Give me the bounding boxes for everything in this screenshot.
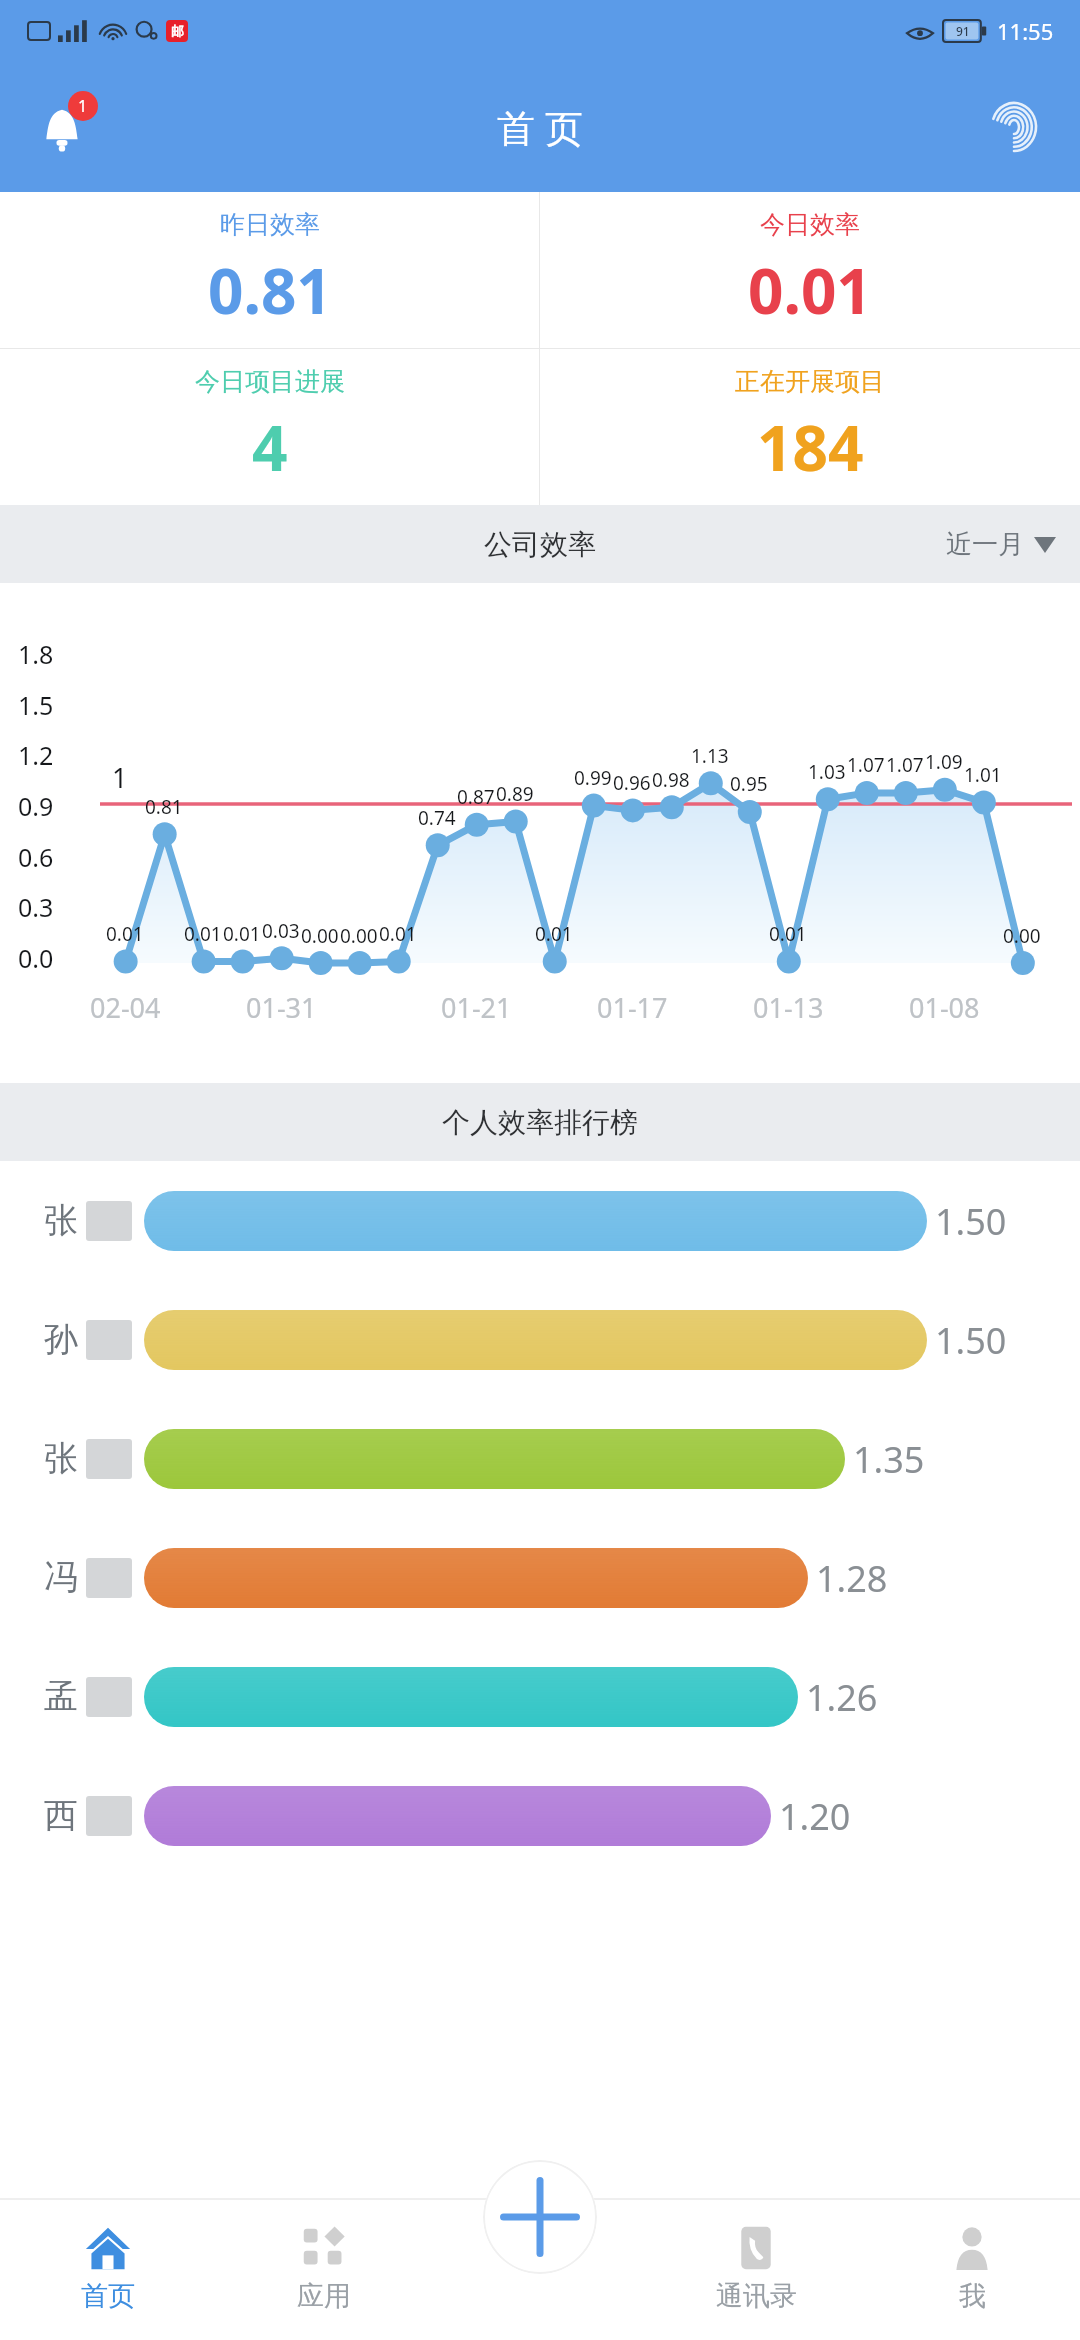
staticText: 0.99 [574, 765, 612, 791]
staticText: 1.01 [964, 762, 1002, 788]
staticText: 1.8 [18, 637, 54, 671]
staticText: 0.6 [18, 840, 54, 874]
button[interactable]: 张 [0, 1399, 1080, 1518]
button[interactable]: 指纹登录 [978, 91, 1050, 163]
staticText: 我 [959, 2279, 986, 2313]
staticText: 0.81 [208, 248, 332, 332]
staticText: 昨日效率 [220, 209, 320, 240]
staticText: 1.13 [691, 743, 729, 769]
staticText: 首 页 [497, 101, 583, 153]
staticText: 4 [252, 405, 288, 489]
staticText: 0.00 [301, 923, 339, 949]
button[interactable]: 通知 [22, 87, 102, 167]
staticText: 0.01 [223, 921, 261, 947]
staticText: 0.01 [748, 248, 872, 332]
button[interactable]: 应用 [216, 2198, 432, 2340]
button[interactable]: 正在开展项目 [540, 349, 1080, 505]
button[interactable]: 昨日效率 [0, 192, 539, 348]
staticText: 184 [757, 405, 864, 489]
button[interactable]: 冯 [0, 1518, 1080, 1637]
staticText: 0.03 [262, 918, 300, 944]
staticText: 1.2 [18, 738, 54, 772]
staticText: 公司效率 [484, 527, 596, 562]
button[interactable]: 首页 [0, 2198, 216, 2340]
staticText: 0.01 [184, 921, 222, 947]
staticText: 1.50 [935, 1197, 1007, 1246]
staticText: 0.87 [457, 784, 495, 810]
staticText: 0.74 [418, 805, 456, 831]
staticText: 0.01 [379, 921, 417, 947]
staticText: 正在开展项目 [735, 366, 885, 397]
button[interactable]: 新建 [483, 2160, 597, 2274]
staticText: 0.98 [652, 767, 690, 793]
staticText: 孟 [44, 1675, 78, 1718]
staticText: 1.07 [847, 752, 885, 778]
staticText: 0.01 [769, 921, 807, 947]
staticText: 0.3 [18, 890, 54, 924]
button[interactable]: 今日效率 [540, 192, 1080, 348]
button[interactable]: 张 [0, 1161, 1080, 1280]
staticText: 01-31 [246, 989, 317, 1026]
staticText: 应用 [297, 2279, 351, 2313]
staticText: 今日效率 [760, 209, 860, 240]
staticText: 1 [78, 95, 88, 117]
staticText: 0.01 [535, 921, 573, 947]
staticText: 1.5 [18, 688, 54, 722]
staticText: 1.07 [886, 752, 924, 778]
staticText: 0.95 [730, 771, 768, 797]
staticText: 张 [44, 1199, 78, 1242]
staticText: 0.89 [496, 781, 534, 807]
staticText: 通讯录 [716, 2279, 797, 2313]
staticText: 91 [956, 23, 970, 39]
staticText: 0.81 [145, 794, 183, 820]
staticText: 0.9 [18, 789, 54, 823]
staticText: 1.35 [853, 1435, 925, 1484]
staticText: 02-04 [90, 989, 161, 1026]
button[interactable]: 近一月 [946, 528, 1056, 561]
staticText: 01-13 [753, 989, 824, 1026]
staticText: 0.01 [106, 921, 144, 947]
staticText: 0.00 [1003, 923, 1041, 949]
staticText: 11:55 [997, 16, 1054, 46]
staticText: 西 [44, 1794, 78, 1837]
staticText: 邮 [171, 23, 184, 39]
staticText: 1 [112, 759, 128, 796]
staticText: 1.26 [806, 1673, 878, 1722]
staticText: 1.03 [808, 759, 846, 785]
staticText: 孙 [44, 1318, 78, 1361]
button[interactable]: 孙 [0, 1280, 1080, 1399]
staticText: 01-08 [909, 989, 980, 1026]
staticText: 1.50 [935, 1316, 1007, 1365]
staticText: 01-17 [597, 989, 668, 1026]
button[interactable]: 孟 [0, 1637, 1080, 1756]
button[interactable]: 今日项目进展 [0, 349, 539, 505]
staticText: 张 [44, 1437, 78, 1480]
staticText: 冯 [44, 1556, 78, 1599]
button[interactable]: 我 [864, 2198, 1080, 2340]
staticText: 1.28 [816, 1554, 888, 1603]
staticText: 今日项目进展 [195, 366, 345, 397]
staticText: 近一月 [946, 528, 1024, 561]
staticText: 0.00 [340, 923, 378, 949]
button[interactable]: 通讯录 [648, 2198, 864, 2340]
staticText: 1.09 [925, 749, 963, 775]
staticText: 0.96 [613, 770, 651, 796]
staticText: 0.0 [18, 941, 54, 975]
staticText: 个人效率排行榜 [442, 1105, 638, 1140]
staticText: 1.20 [779, 1792, 851, 1841]
button[interactable]: 西 [0, 1756, 1080, 1875]
staticText: 01-21 [441, 989, 512, 1026]
staticText: 首页 [81, 2279, 135, 2313]
